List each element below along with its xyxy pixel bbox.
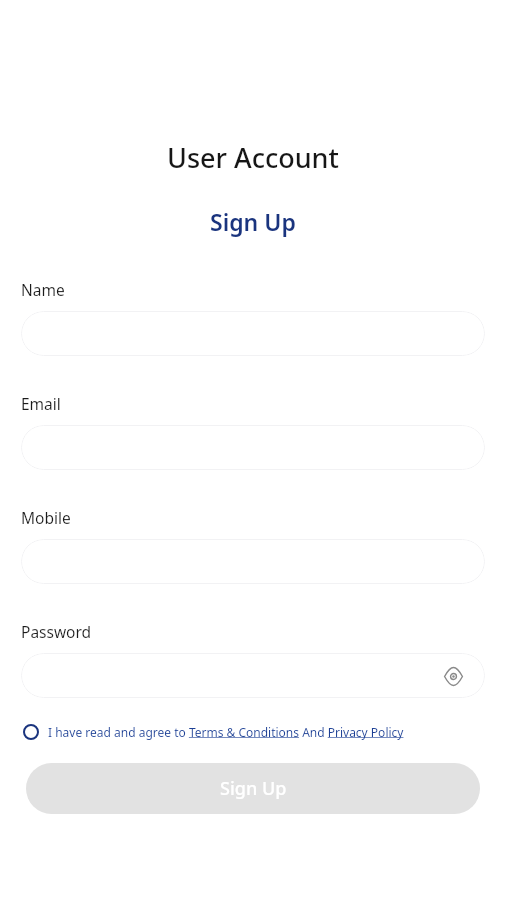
staticText: Email <box>21 393 61 414</box>
button[interactable]: Show password <box>439 662 467 690</box>
staticText: Sign Up <box>220 776 287 801</box>
button[interactable]: Sign Up <box>26 763 480 814</box>
staticText: Name <box>21 279 65 300</box>
staticText: Password <box>21 621 92 642</box>
button[interactable]: Show password <box>21 653 485 698</box>
staticText: User Account <box>167 139 339 176</box>
staticText: Mobile <box>21 507 71 528</box>
staticText: Sign Up <box>210 206 296 237</box>
staticText: I have read and agree to Terms & Conditi… <box>48 724 404 740</box>
button[interactable]: Sign Up <box>210 206 296 237</box>
button[interactable]: Agree to terms <box>21 718 485 746</box>
other: Agree to terms <box>21 722 41 742</box>
